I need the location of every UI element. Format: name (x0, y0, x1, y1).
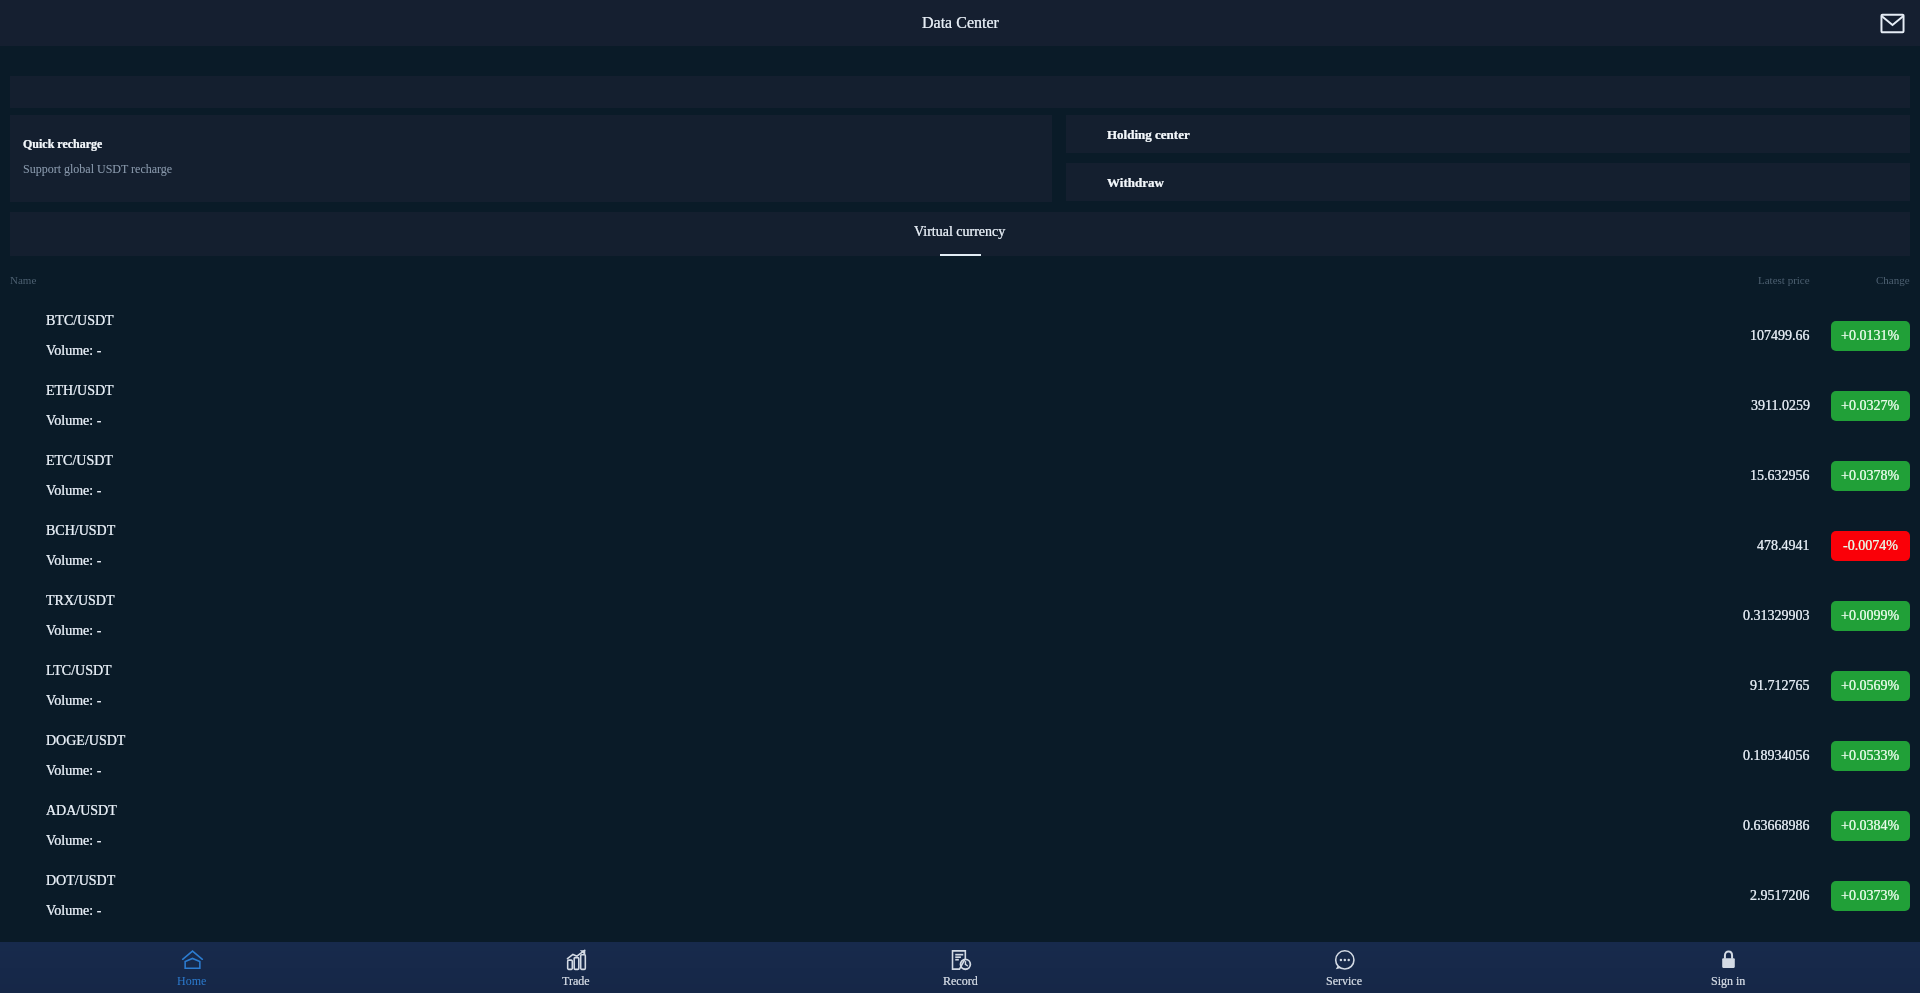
button[interactable]: Sign in (1536, 942, 1920, 993)
staticText: DOGE/USDT (46, 733, 126, 749)
staticText: 0.18934056 (1743, 748, 1810, 764)
button[interactable]: LTC/USDT (0, 651, 1920, 721)
staticText: DOT/USDT (46, 873, 116, 889)
staticText: +0.0569% (1841, 678, 1900, 694)
button[interactable]: Home (0, 942, 384, 993)
staticText: 0.31329903 (1743, 608, 1810, 624)
staticText: Quick recharge (23, 137, 103, 150)
button[interactable]: ADA/USDT (0, 791, 1920, 861)
button[interactable]: Holding center (1066, 115, 1910, 153)
staticText: +0.0099% (1841, 608, 1900, 624)
button[interactable]: BTC/USDT (0, 301, 1920, 371)
staticText: Home (177, 974, 207, 987)
staticText: Holding center (1107, 127, 1190, 141)
staticText: 2.9517206 (1750, 888, 1810, 904)
staticText: 3911.0259 (1751, 398, 1810, 414)
staticText: Volume: - (46, 833, 102, 849)
staticText: Volume: - (46, 693, 102, 709)
staticText: Support global USDT recharge (23, 162, 173, 175)
button[interactable]: ETH/USDT (0, 371, 1920, 441)
staticText: BCH/USDT (46, 523, 116, 539)
staticText: Volume: - (46, 903, 102, 919)
staticText: +0.0131% (1841, 328, 1900, 344)
staticText: +0.0378% (1841, 468, 1900, 484)
button[interactable]: DOT/USDT (0, 861, 1920, 931)
button[interactable]: Quick recharge (10, 115, 1052, 202)
staticText: Withdraw (1107, 175, 1164, 189)
staticText: Volume: - (46, 413, 102, 429)
staticText: +0.0384% (1841, 818, 1900, 834)
staticText: Volume: - (46, 763, 102, 779)
staticText: Latest price (1758, 274, 1810, 286)
staticText: BTC/USDT (46, 313, 114, 329)
staticText: Record (943, 974, 978, 987)
staticText: 0.63668986 (1743, 818, 1810, 834)
button[interactable]: ETC/USDT (0, 441, 1920, 511)
staticText: 478.4941 (1757, 538, 1810, 554)
staticText: TRX/USDT (46, 593, 115, 609)
staticText: Sign in (1711, 974, 1746, 987)
staticText: 91.712765 (1750, 678, 1810, 694)
staticText: Volume: - (46, 483, 102, 499)
staticText: Volume: - (46, 623, 102, 639)
staticText: ADA/USDT (46, 803, 117, 819)
staticText: Virtual currency (914, 224, 1006, 240)
staticText: +0.0373% (1841, 888, 1900, 904)
button[interactable]: Messages (1872, 3, 1912, 43)
button[interactable]: Record (768, 942, 1152, 993)
button[interactable]: BCH/USDT (0, 511, 1920, 581)
staticText: Data Center (922, 14, 999, 32)
staticText: +0.0533% (1841, 748, 1900, 764)
staticText: 15.632956 (1750, 468, 1810, 484)
button[interactable]: Virtual currency (900, 212, 1020, 256)
staticText: 107499.66 (1750, 328, 1810, 344)
button[interactable]: DOGE/USDT (0, 721, 1920, 791)
staticText: Trade (562, 974, 590, 987)
button[interactable]: Service (1152, 942, 1536, 993)
button[interactable]: Withdraw (1066, 163, 1910, 201)
staticText: Change (1876, 274, 1910, 286)
staticText: -0.0074% (1843, 538, 1898, 554)
button[interactable]: TRX/USDT (0, 581, 1920, 651)
staticText: +0.0327% (1841, 398, 1900, 414)
staticText: Name (10, 274, 37, 286)
button[interactable]: Trade (384, 942, 768, 993)
staticText: ETC/USDT (46, 453, 113, 469)
staticText: ETH/USDT (46, 383, 114, 399)
staticText: Volume: - (46, 343, 102, 359)
staticText: Service (1326, 974, 1362, 987)
staticText: Volume: - (46, 553, 102, 569)
staticText: LTC/USDT (46, 663, 112, 679)
